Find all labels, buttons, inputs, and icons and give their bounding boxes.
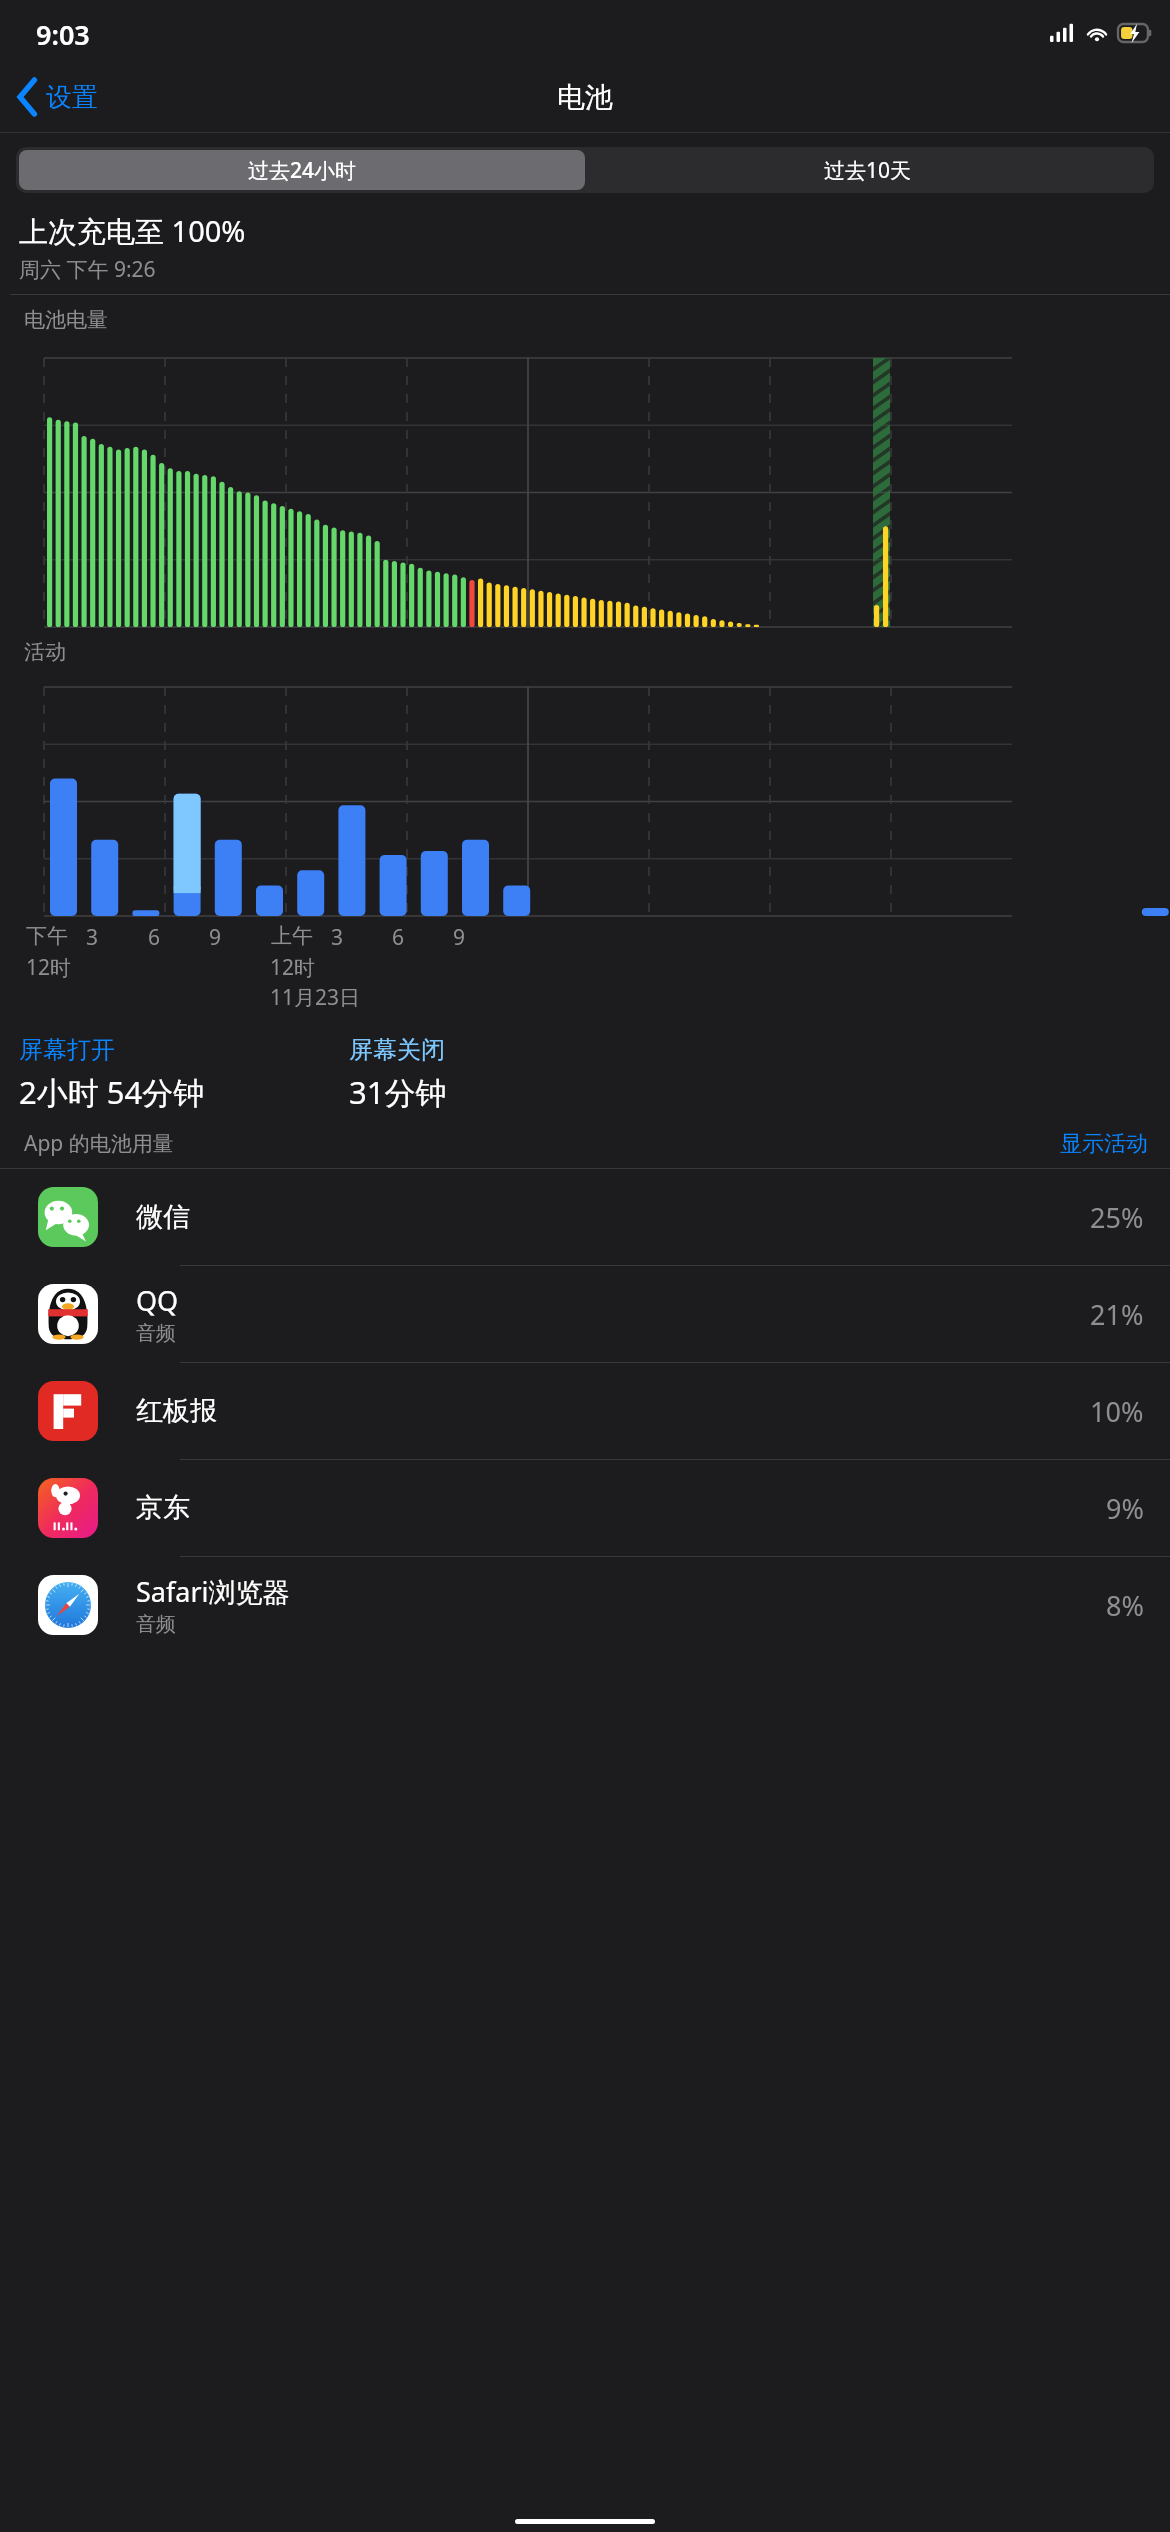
staticText: 屏幕打开 (19, 1035, 115, 1065)
staticText: 显示活动 (1060, 1130, 1148, 1158)
button[interactable]: Safari浏览器 (0, 1557, 1170, 1653)
button[interactable]: 微信 (0, 1169, 1170, 1265)
button[interactable]: 红板报 (0, 1363, 1170, 1459)
staticText: 屏幕关闭 (349, 1035, 445, 1065)
staticText: 9% (1106, 1490, 1144, 1527)
staticText: 红板报 (136, 1394, 217, 1428)
staticText: 电池 (557, 80, 613, 115)
staticText: 上午 (271, 923, 313, 949)
staticText: 11月23日 (270, 983, 361, 1012)
staticText: 6 (392, 923, 405, 952)
staticText: 31分钟 (349, 1071, 447, 1113)
staticText: 9:03 (36, 16, 90, 53)
staticText: 周六 下午 9:26 (19, 255, 156, 284)
staticText: 微信 (136, 1200, 190, 1234)
button[interactable]: QQ (0, 1266, 1170, 1362)
staticText: 音频 (136, 1321, 176, 1346)
staticText: 过去24小时 (248, 156, 357, 185)
staticText: 8% (1106, 1587, 1144, 1624)
staticText: 3 (331, 923, 344, 952)
staticText: 6 (148, 923, 161, 952)
staticText: 9 (453, 923, 466, 952)
staticText: 下午 (26, 923, 68, 949)
staticText: 21% (1090, 1296, 1144, 1333)
button[interactable]: 过去10天 (585, 150, 1151, 190)
staticText: 京东 (136, 1491, 190, 1525)
button[interactable]: 过去24小时 (19, 150, 585, 190)
staticText: 10% (1090, 1393, 1144, 1430)
button[interactable]: 设置 (0, 74, 110, 120)
staticText: 25% (1090, 1199, 1144, 1236)
staticText: 过去10天 (824, 156, 912, 185)
staticText: 上次充电至 100% (19, 211, 246, 251)
staticText: 3 (86, 923, 99, 952)
staticText: Safari浏览器 (136, 1573, 290, 1610)
button[interactable]: 京东 (0, 1460, 1170, 1556)
staticText: 音频 (136, 1612, 176, 1637)
staticText: App 的电池用量 (24, 1129, 174, 1158)
staticText: 12时 (26, 953, 72, 982)
button[interactable]: 显示活动 (1060, 1130, 1148, 1158)
staticText: 2小时 54分钟 (19, 1071, 205, 1113)
staticText: 电池电量 (24, 307, 108, 333)
staticText: QQ (136, 1282, 179, 1319)
staticText: 设置 (46, 81, 98, 114)
staticText: 活动 (24, 639, 66, 665)
staticText: 9 (209, 923, 222, 952)
staticText: 12时 (270, 953, 316, 982)
